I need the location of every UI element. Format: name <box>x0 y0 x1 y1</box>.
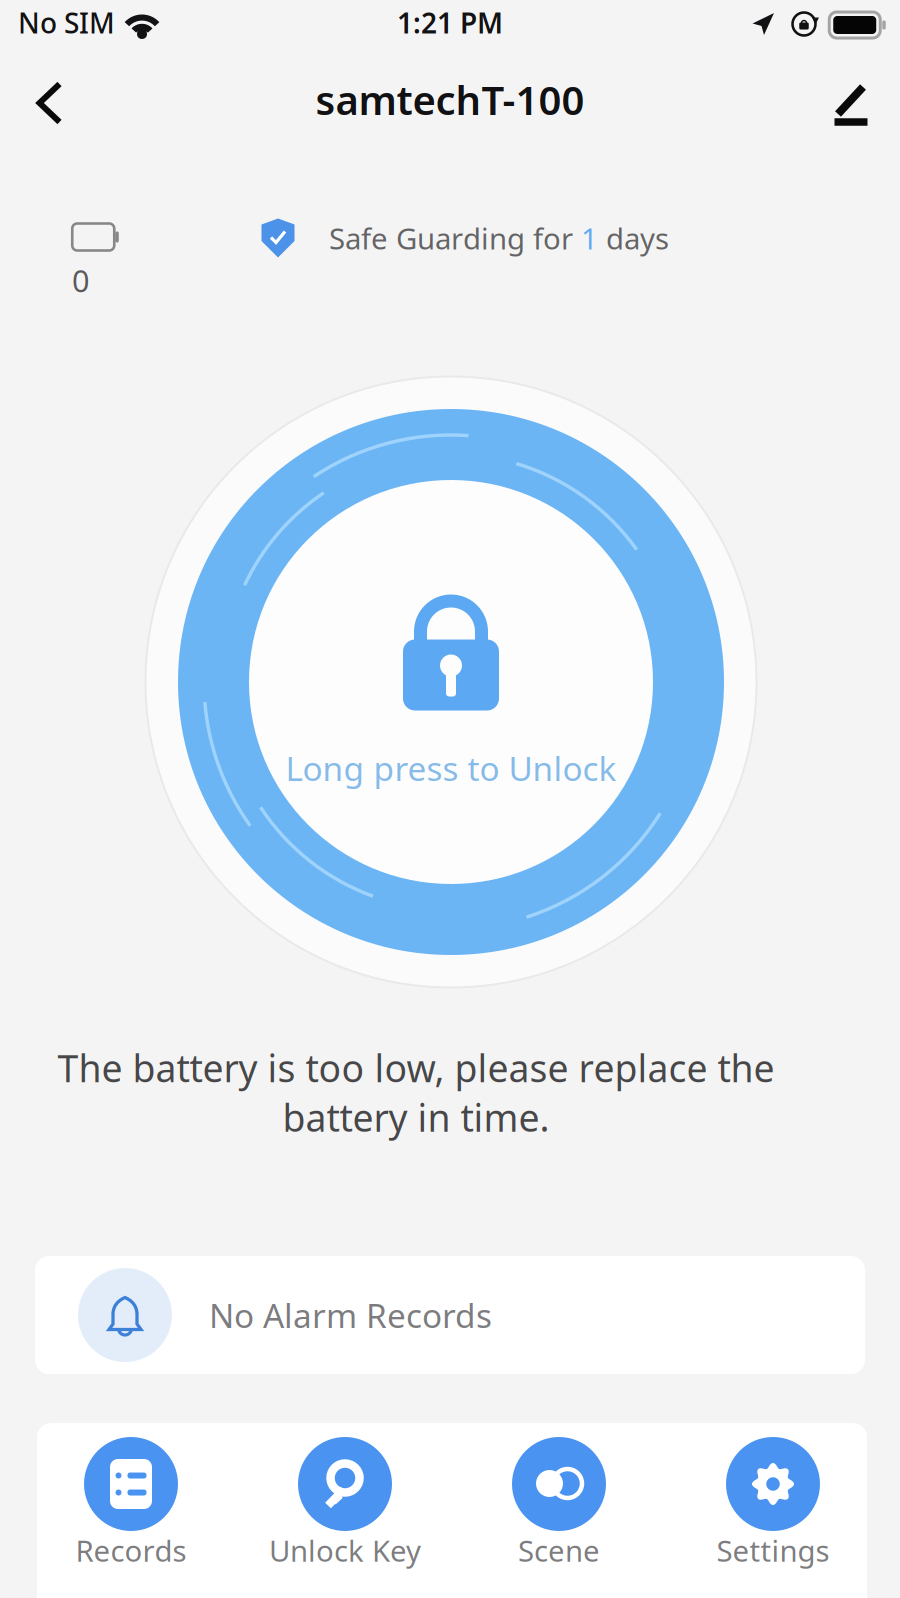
button[interactable]: Records <box>24 1437 238 1570</box>
staticText: 1:21 PM <box>397 4 503 41</box>
staticText: The battery is too low, please replace t… <box>57 1043 774 1093</box>
button[interactable]: No Alarm Records <box>35 1256 865 1374</box>
button[interactable]: Unlock Key <box>238 1437 452 1570</box>
button[interactable]: Settings <box>666 1437 880 1570</box>
staticText: No Alarm Records <box>209 1293 492 1337</box>
staticText: Long press to Unlock <box>285 746 616 790</box>
button[interactable]: Scene <box>452 1437 666 1570</box>
button[interactable]: Back <box>5 59 93 147</box>
button[interactable]: Edit <box>808 57 894 145</box>
staticText: samtechT-100 <box>315 73 584 126</box>
staticText: Scene <box>518 1531 600 1570</box>
staticText: Safe Guarding for <box>329 218 581 257</box>
staticText: battery in time. <box>282 1093 549 1142</box>
staticText: 0 <box>72 260 90 301</box>
staticText: Unlock Key <box>269 1531 421 1570</box>
staticText: 1 <box>581 218 598 257</box>
staticText: days <box>598 218 669 257</box>
staticText: No SIM <box>18 4 115 41</box>
staticText: Records <box>75 1531 186 1570</box>
staticText: Settings <box>716 1531 829 1570</box>
